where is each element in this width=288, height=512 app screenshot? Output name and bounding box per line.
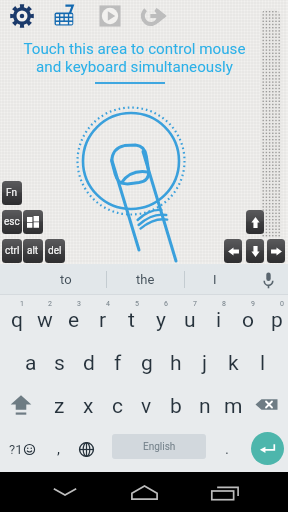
staticText: del: [48, 245, 62, 257]
button[interactable]: Fn: [2, 181, 22, 205]
staticText: 9: [251, 300, 255, 308]
staticText: f: [114, 351, 122, 376]
staticText: l: [260, 351, 266, 376]
staticText: English: [143, 441, 176, 453]
button[interactable]: l: [245, 340, 274, 383]
button[interactable]: esc: [2, 210, 22, 234]
staticText: I: [213, 272, 217, 287]
button[interactable]: Keyboard: [44, 0, 88, 32]
staticText: m: [224, 394, 243, 419]
staticText: 8: [222, 300, 226, 308]
button[interactable]: the: [106, 264, 184, 295]
button[interactable]: 9: [230, 295, 259, 340]
staticText: ctrl: [5, 245, 20, 257]
button[interactable]: Up: [246, 210, 264, 234]
staticText: i: [216, 308, 222, 333]
button[interactable]: ctrl: [2, 239, 22, 263]
staticText: 3: [77, 300, 81, 308]
button[interactable]: Settings: [0, 0, 44, 32]
staticText: the: [136, 272, 155, 287]
staticText: t: [128, 308, 135, 333]
staticText: v: [141, 394, 152, 419]
staticText: to: [60, 272, 72, 287]
button[interactable]: 7: [172, 295, 201, 340]
staticText: o: [242, 308, 254, 333]
staticText: r: [99, 308, 107, 333]
button[interactable]: Voice input: [248, 264, 288, 295]
button[interactable]: Left: [224, 239, 242, 263]
button[interactable]: Back: [41, 472, 89, 512]
button[interactable]: j: [187, 340, 216, 383]
staticText: y: [156, 308, 166, 333]
button[interactable]: 2: [28, 295, 56, 340]
staticText: h: [170, 351, 182, 376]
staticText: a: [25, 351, 37, 376]
staticText: 1: [20, 300, 24, 308]
button[interactable]: alt: [23, 239, 43, 263]
button[interactable]: 6: [143, 295, 172, 340]
button[interactable]: 4: [85, 295, 114, 340]
button[interactable]: Home: [120, 472, 168, 512]
staticText: ,: [57, 440, 60, 458]
staticText: x: [83, 394, 94, 419]
button[interactable]: s: [42, 340, 71, 383]
button[interactable]: d: [71, 340, 100, 383]
staticText: e: [68, 308, 80, 333]
button[interactable]: ,: [43, 426, 73, 472]
staticText: q: [11, 308, 23, 333]
button[interactable]: g: [129, 340, 158, 383]
button[interactable]: Scroll: [260, 8, 281, 237]
staticText: 7: [193, 300, 197, 308]
staticText: 5: [135, 300, 139, 308]
button[interactable]: .: [212, 426, 242, 472]
staticText: and keyboard simultaneously: [36, 58, 233, 76]
button[interactable]: Windows: [23, 210, 43, 234]
staticText: s: [54, 351, 65, 376]
staticText: d: [83, 351, 95, 376]
button[interactable]: 0: [259, 295, 288, 340]
button[interactable]: Enter: [251, 432, 284, 465]
staticText: alt: [27, 245, 39, 257]
button[interactable]: b: [158, 383, 187, 426]
button[interactable]: 8: [201, 295, 230, 340]
button[interactable]: v: [129, 383, 158, 426]
button[interactable]: English: [112, 434, 206, 459]
button[interactable]: m: [216, 383, 245, 426]
staticText: u: [184, 308, 196, 333]
button[interactable]: k: [216, 340, 245, 383]
staticText: c: [112, 394, 123, 419]
button[interactable]: n: [187, 383, 216, 426]
button[interactable]: Right: [267, 239, 285, 263]
staticText: w: [37, 308, 53, 333]
button[interactable]: z: [42, 383, 71, 426]
button[interactable]: f: [100, 340, 129, 383]
staticText: k: [228, 351, 239, 376]
button[interactable]: Change language: [72, 426, 101, 472]
staticText: 2: [48, 300, 52, 308]
button[interactable]: h: [158, 340, 187, 383]
staticText: .: [225, 440, 229, 458]
button[interactable]: ?1: [0, 426, 43, 472]
staticText: Fn: [6, 187, 18, 199]
button[interactable]: c: [100, 383, 129, 426]
button[interactable]: 3: [56, 295, 85, 340]
staticText: 6: [164, 300, 168, 308]
button[interactable]: x: [71, 383, 100, 426]
staticText: esc: [4, 216, 20, 228]
staticText: g: [141, 351, 153, 376]
button[interactable]: Recents: [201, 472, 249, 512]
staticText: p: [271, 308, 283, 333]
button[interactable]: a: [13, 340, 42, 383]
button[interactable]: Exit: [132, 0, 176, 32]
button[interactable]: del: [45, 239, 65, 263]
staticText: z: [54, 394, 65, 419]
staticText: Touch this area to control mouse: [23, 40, 246, 58]
button[interactable]: to: [26, 264, 106, 295]
button[interactable]: 5: [114, 295, 143, 340]
button[interactable]: I: [184, 264, 246, 295]
button[interactable]: 1: [0, 295, 28, 340]
button[interactable]: Shift: [0, 383, 42, 426]
button[interactable]: Down: [246, 239, 264, 263]
button[interactable]: Backspace: [245, 383, 288, 426]
button[interactable]: Play: [88, 0, 132, 32]
